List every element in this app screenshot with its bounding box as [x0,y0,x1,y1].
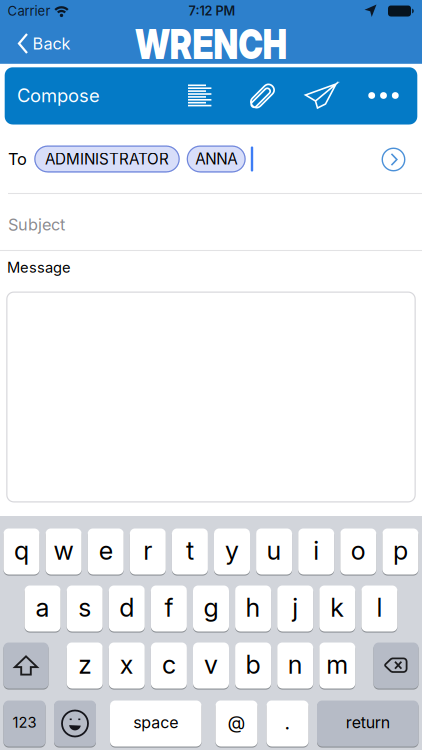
staticText: r [143,535,152,566]
button[interactable]: l [361,584,397,632]
staticText: u [267,535,282,566]
staticText: space [133,713,178,732]
staticText: To [8,149,27,169]
button[interactable]: return [317,699,418,747]
button[interactable]: n [277,641,313,689]
staticText: y [225,535,239,566]
staticText: Subject [8,215,65,234]
button[interactable]: g [193,584,229,632]
button[interactable]: o [340,527,376,575]
button[interactable]: y [214,527,250,575]
staticText: Carrier [7,3,50,19]
button[interactable]: w [46,527,82,575]
button[interactable]: u [256,527,292,575]
button[interactable]: b [235,641,271,689]
button[interactable]: Emoji [54,699,96,747]
staticText: m [326,649,348,680]
staticText: l [376,592,382,623]
staticText: WRENCH [117,19,305,69]
button[interactable]: k [319,584,355,632]
button[interactable]: r [130,527,166,575]
staticText: 123 [12,714,36,731]
button[interactable]: @ [215,699,257,747]
staticText: z [78,649,91,680]
button[interactable]: h [235,584,271,632]
staticText: d [119,592,134,623]
button[interactable]: z [67,641,103,689]
staticText: n [288,649,303,680]
staticText: return [346,713,390,732]
button[interactable]: x [109,641,145,689]
button[interactable]: 123 [3,699,45,747]
staticText: i [313,535,319,566]
staticText: p [393,535,408,566]
button[interactable]: v [193,641,229,689]
staticText: w [54,535,74,566]
button[interactable]: Send [300,75,342,115]
button[interactable]: space [110,699,201,747]
button[interactable]: c [151,641,187,689]
staticText: c [162,649,176,680]
staticText: . [284,711,290,734]
button[interactable]: i [298,527,334,575]
button[interactable]: Insert template [180,75,220,115]
staticText: k [330,592,344,623]
staticText: f [164,592,173,623]
button[interactable]: ADMINISTRATOR [34,145,180,172]
button[interactable]: Message [6,291,416,502]
staticText: ANNA [195,150,237,168]
staticText: s [78,592,91,623]
button[interactable]: q [3,527,39,575]
button[interactable]: Back [6,23,84,63]
button[interactable]: Attach file [242,76,282,116]
button[interactable]: a [25,584,61,632]
staticText: e [99,535,113,566]
button[interactable]: e [88,527,124,575]
staticText: j [292,592,298,623]
staticText: x [120,649,134,680]
staticText: Back [32,34,70,53]
button[interactable]: More options [362,75,404,115]
staticText: a [36,592,50,623]
button[interactable]: t [172,527,208,575]
staticText: g [203,592,218,623]
staticText: h [246,592,261,623]
button[interactable]: s [67,584,103,632]
staticText: @ [227,711,245,734]
button[interactable]: d [109,584,145,632]
button[interactable]: f [151,584,187,632]
staticText: Compose [17,84,100,107]
button[interactable]: . [266,699,308,747]
staticText: t [186,535,194,566]
button[interactable]: j [277,584,313,632]
staticText: q [14,535,29,566]
staticText: b [246,649,261,680]
staticText: o [351,535,366,566]
button[interactable]: ANNA [187,145,246,172]
staticText: 7:12 PM [188,3,235,19]
button[interactable]: m [319,641,355,689]
button[interactable]: Subject [0,194,422,250]
button[interactable]: Delete [373,641,418,689]
staticText: Message [7,259,71,276]
button[interactable]: Show recipients [378,144,408,174]
staticText: ADMINISTRATOR [45,150,169,168]
button[interactable]: Shift [3,641,48,689]
staticText: v [204,649,218,680]
button[interactable]: p [382,527,418,575]
